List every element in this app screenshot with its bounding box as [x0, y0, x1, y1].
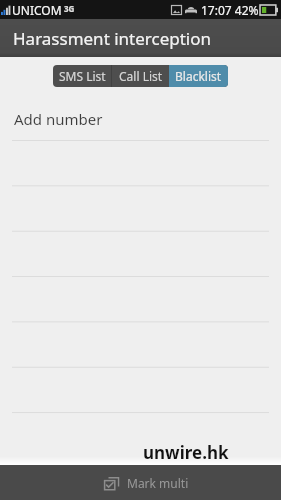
- staticText: SMS List: [59, 68, 106, 84]
- staticText: Blacklist: [175, 68, 222, 84]
- staticText: UNICOM: [12, 2, 62, 18]
- staticText: unwire.hk: [143, 441, 229, 464]
- staticText: Add number: [14, 109, 103, 129]
- button[interactable]: Harassment interception: [0, 19, 281, 57]
- button[interactable]: SMS List: [53, 65, 111, 87]
- staticText: Call List: [119, 68, 163, 84]
- staticText: 17:07 42%: [201, 2, 259, 18]
- button[interactable]: Add number: [0, 96, 281, 141]
- button[interactable]: Call List: [112, 65, 169, 87]
- staticText: Harassment interception: [13, 27, 211, 50]
- button[interactable]: Mark multiple: [104, 471, 197, 495]
- staticText: 3G: [64, 3, 75, 14]
- staticText: Mark multi: [127, 475, 189, 491]
- other: Mark multiple: [104, 477, 119, 490]
- button[interactable]: Blacklist: [169, 65, 228, 87]
